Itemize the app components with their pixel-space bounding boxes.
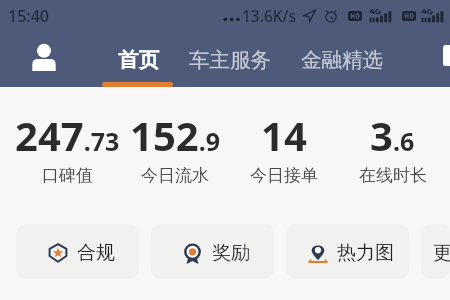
button[interactable]: 奖励 [151,224,274,279]
staticText: 14 [261,108,307,162]
button[interactable]: 首页 [118,46,159,87]
button[interactable]: 金融精选 [301,46,383,87]
staticText: 在线时长 [359,165,427,186]
button[interactable]: 合规 [16,224,139,279]
staticText: 更多 [433,241,450,265]
staticText: 合规 [77,241,115,265]
staticText: 车主服务 [189,47,271,73]
staticText: 152.9 [130,108,220,162]
staticText: 13.6K/s [242,5,297,26]
staticText: 首页 [118,47,159,73]
staticText: 今日接单 [250,165,318,186]
staticText: 15:40 [8,5,49,27]
button[interactable]: 车主服务 [189,46,271,87]
staticText: 奖励 [212,241,250,265]
button[interactable]: 热力图 [286,224,409,279]
button[interactable]: Profile [31,44,57,71]
button[interactable]: 更多 [421,224,450,279]
button[interactable]: Messages [443,45,450,66]
staticText: 金融精选 [301,47,383,73]
staticText: 今日流水 [141,165,209,186]
staticText: 3.6 [370,108,415,162]
staticText: 口碑值 [42,165,93,186]
staticText: 热力图 [337,241,394,265]
staticText: 247.73 [15,108,120,162]
